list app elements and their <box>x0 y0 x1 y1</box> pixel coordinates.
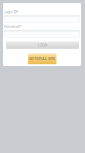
button[interactable]: LOGIN <box>6 42 79 49</box>
button[interactable]: GO TO FULL SITE <box>28 54 56 64</box>
staticText: Login ID* <box>3 10 18 14</box>
staticText: Password* <box>3 24 21 29</box>
staticText: LOGIN <box>38 43 47 47</box>
staticText: GO TO FULL SITE <box>29 57 55 61</box>
